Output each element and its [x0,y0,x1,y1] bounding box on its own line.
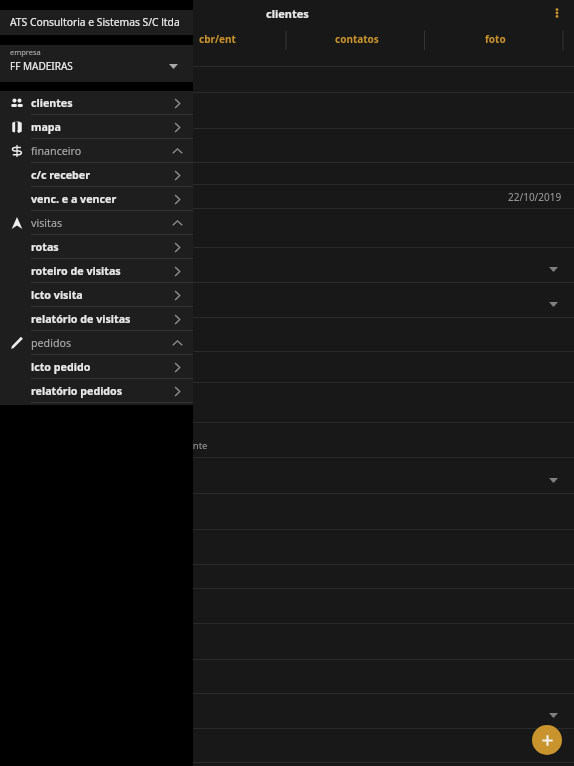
button[interactable] [0,694,574,729]
button[interactable] [0,383,574,423]
button[interactable] [0,494,574,530]
button[interactable] [0,248,574,283]
staticText: clientes [266,6,309,21]
staticText: roteiro de visitas [31,264,121,279]
button[interactable]: 22/10/2019 [0,185,574,209]
button[interactable] [0,624,574,660]
staticText: pedidos [31,336,72,351]
button[interactable]: empresa [0,45,193,82]
staticText: rotas [31,240,59,255]
staticText: 22/10/2019 [508,190,562,204]
staticText: cliente [178,439,208,452]
button[interactable]: cbr/ent [148,28,287,50]
staticText: FF MADEIRAS [10,59,73,73]
button[interactable]: relatório de visitas [0,307,193,331]
button[interactable] [0,729,574,763]
button[interactable]: Adicionar [532,725,562,755]
staticText: lcto pedido [31,360,91,375]
button[interactable] [0,50,574,67]
button[interactable]: financeiro [0,139,193,163]
staticText: foto [485,32,506,46]
staticText: contatos [335,32,379,46]
button[interactable]: contatos [287,28,426,50]
button[interactable] [0,93,574,129]
staticText: c/c receber [31,168,90,183]
button[interactable] [0,129,574,163]
button[interactable]: roteiro de visitas [0,259,193,283]
button[interactable]: foto [426,28,565,50]
button[interactable] [0,589,574,624]
button[interactable] [0,209,574,248]
button[interactable]: cliente [0,423,574,458]
staticText: cbr/ent [199,32,236,46]
staticText: venc. e a vencer [31,192,117,207]
button[interactable]: lcto visita [0,283,193,307]
button[interactable]: cad. principal [9,28,148,50]
button[interactable] [0,67,574,93]
staticText: visitas [31,216,63,231]
button[interactable]: rotas [0,235,193,259]
button[interactable] [0,352,574,383]
button[interactable] [0,283,574,318]
staticText: clientes [31,96,73,111]
staticText: ATS Consultoria e Sistemas S/C ltda [10,15,180,29]
button[interactable]: lcto pedido [0,355,193,379]
staticText: relatório pedidos [31,384,123,399]
staticText: lcto visita [31,288,83,303]
button[interactable]: pedidos [0,331,193,355]
button[interactable] [0,458,574,494]
button[interactable]: venc. e a vencer [0,187,193,211]
button[interactable]: mapa [0,115,193,139]
button[interactable]: clientes [0,91,193,115]
staticText: financeiro [31,144,82,159]
button[interactable] [0,163,574,185]
button[interactable]: relatório pedidos [0,379,193,403]
button[interactable] [0,530,574,565]
staticText: empresa [10,47,41,57]
button[interactable]: visitas [0,211,193,235]
staticText: relatório de visitas [31,312,131,327]
button[interactable]: c/c receber [0,163,193,187]
button[interactable] [0,565,574,589]
staticText: mapa [31,120,61,135]
button[interactable] [0,318,574,352]
button[interactable] [0,660,574,694]
staticText: cad. principal [45,32,112,46]
button[interactable]: Mais opções [540,0,574,28]
